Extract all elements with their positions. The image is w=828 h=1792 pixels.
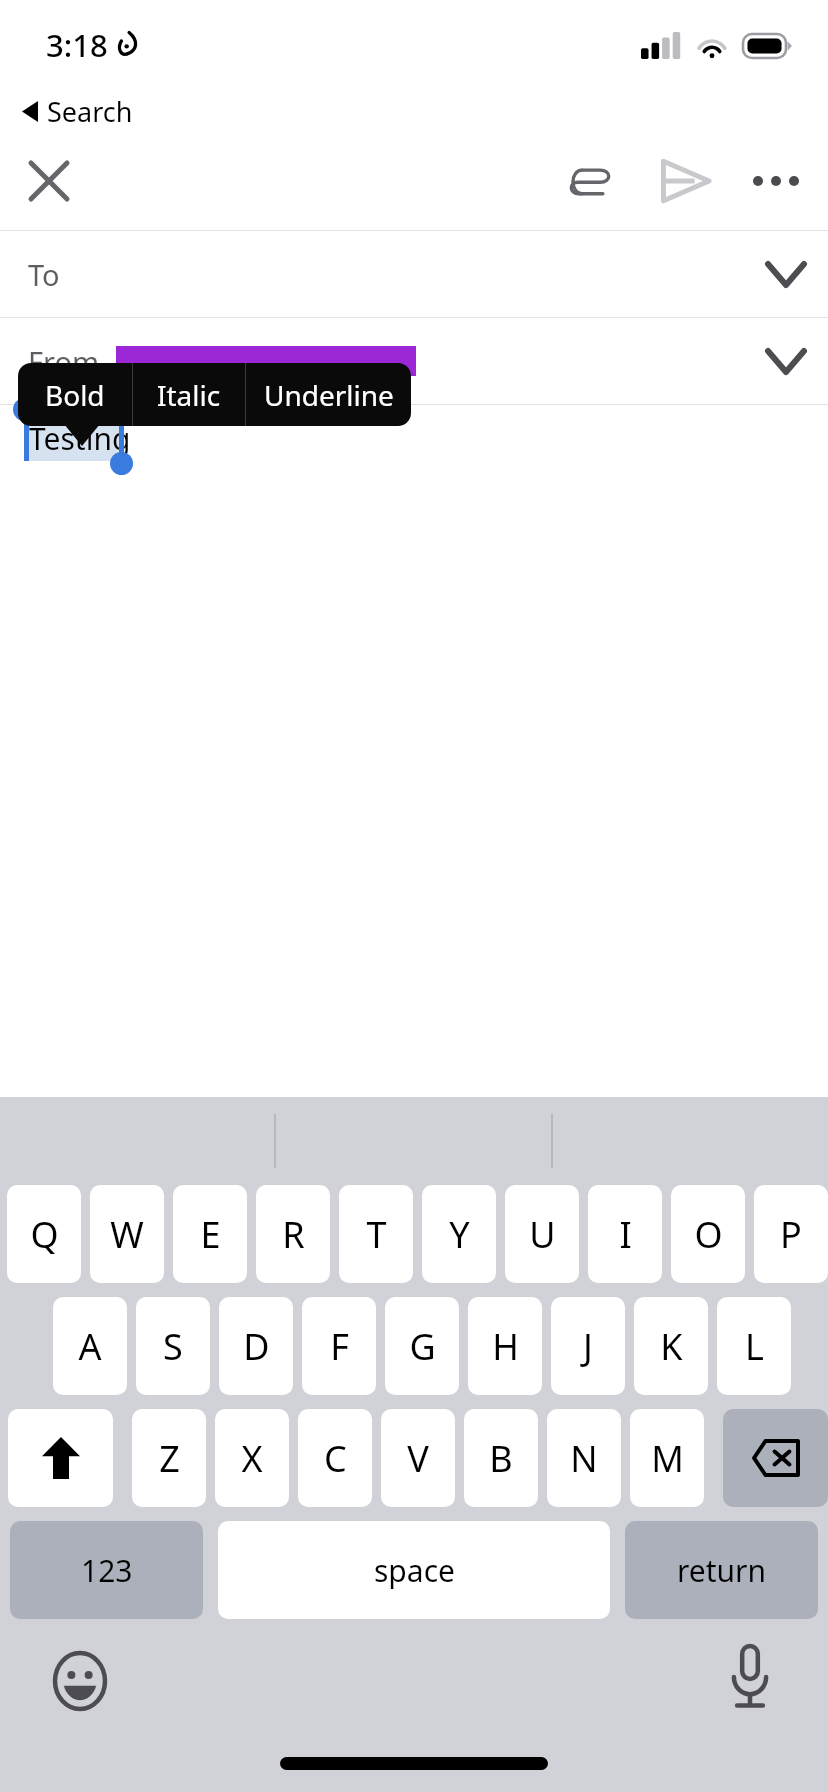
button[interactable]: Attach file [552,143,628,219]
button[interactable]: L [717,1297,791,1395]
staticText: D [243,1322,270,1371]
button[interactable]: S [136,1297,210,1395]
staticText: G [409,1322,436,1371]
button[interactable]: Shift [8,1409,113,1507]
staticText: I [619,1210,632,1259]
button[interactable]: Bold [18,363,132,426]
staticText: A [78,1322,102,1371]
button[interactable]: W [90,1185,164,1283]
button[interactable]: O [671,1185,745,1283]
button[interactable]: To [0,231,828,317]
button[interactable]: B [464,1409,538,1507]
staticText: 3:18 [46,24,108,66]
button[interactable]: X [215,1409,289,1507]
staticText: C [324,1434,347,1483]
staticText: Testing [29,418,131,459]
staticText: Search [47,93,133,130]
staticText: S [163,1322,183,1371]
staticText: space [374,1550,455,1591]
button[interactable]: A [53,1297,127,1395]
button[interactable]: Q [7,1185,81,1283]
button[interactable]: 123 [10,1521,203,1619]
button[interactable]: From [0,318,828,404]
button[interactable]: Backspace [723,1409,828,1507]
button[interactable]: D [219,1297,293,1395]
staticText: Italic [157,376,221,414]
staticText: K [660,1322,683,1371]
button[interactable]: V [381,1409,455,1507]
button[interactable]: Close [20,152,78,210]
staticText: J [583,1322,593,1371]
staticText: Underline [264,376,394,414]
button[interactable]: Y [422,1185,496,1283]
staticText: L [745,1322,764,1371]
button[interactable]: K [634,1297,708,1395]
button[interactable]: Z [132,1409,206,1507]
button[interactable]: U [505,1185,579,1283]
staticText: N [570,1434,598,1483]
button[interactable]: G [385,1297,459,1395]
button[interactable]: Dictate [716,1643,784,1711]
button[interactable]: Emoji [46,1647,114,1715]
button[interactable]: P [754,1185,828,1283]
button[interactable]: Send [648,143,724,219]
button[interactable]: N [547,1409,621,1507]
staticText: return [677,1550,767,1591]
staticText: W [110,1210,144,1259]
staticText: E [200,1210,221,1259]
button[interactable]: E [173,1185,247,1283]
staticText: Q [30,1210,59,1259]
staticText: U [529,1210,556,1259]
button[interactable]: space [218,1521,610,1619]
staticText: To [28,255,60,294]
button[interactable]: Underline [246,363,411,426]
staticText: Y [449,1210,470,1259]
staticText: Z [159,1434,180,1483]
staticText: T [366,1210,387,1259]
button[interactable]: R [256,1185,330,1283]
button[interactable]: Italic [133,363,245,426]
staticText: Bold [45,376,105,414]
button[interactable]: T [339,1185,413,1283]
staticText: B [489,1434,513,1483]
button[interactable]: J [551,1297,625,1395]
staticText: V [407,1434,429,1483]
staticText: O [694,1210,723,1259]
staticText: M [651,1434,684,1483]
staticText: F [330,1322,349,1371]
staticText: H [492,1322,519,1371]
staticText: P [780,1210,802,1259]
button[interactable]: C [298,1409,372,1507]
button[interactable]: M [630,1409,704,1507]
button[interactable]: I [588,1185,662,1283]
button[interactable]: Search [22,90,828,132]
staticText: X [241,1434,263,1483]
staticText: From [28,342,100,381]
button[interactable]: More options [738,143,814,219]
button[interactable]: H [468,1297,542,1395]
button[interactable]: F [302,1297,376,1395]
staticText: R [282,1210,305,1259]
staticText: 123 [81,1550,133,1591]
button[interactable]: return [625,1521,818,1619]
